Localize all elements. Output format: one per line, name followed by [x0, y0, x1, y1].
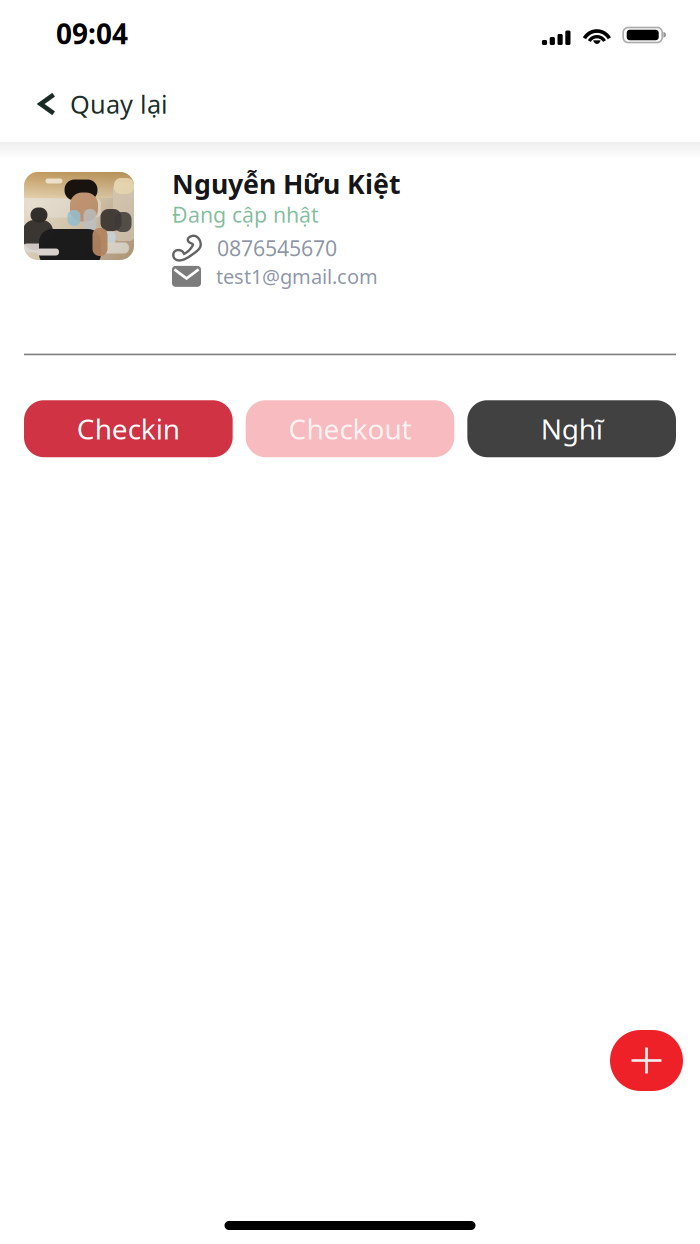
staticText: Checkin	[77, 410, 180, 447]
staticText: 09:04	[56, 15, 128, 52]
button[interactable]: Nghĩ	[467, 400, 676, 457]
staticText: test1@gmail.com	[216, 263, 378, 290]
staticText: Đang cập nhật	[172, 200, 319, 229]
staticText: 0876545670	[217, 234, 337, 262]
button[interactable]: Checkin	[24, 400, 233, 457]
button[interactable]: Quay lại	[0, 71, 194, 137]
staticText: Checkout	[288, 410, 411, 447]
button[interactable]: Add	[610, 1030, 683, 1091]
staticText: Nguyễn Hữu Kiệt	[172, 166, 401, 201]
staticText: Quay lại	[70, 87, 168, 121]
staticText: Nghĩ	[541, 410, 603, 447]
button[interactable]: Checkout	[246, 400, 454, 457]
